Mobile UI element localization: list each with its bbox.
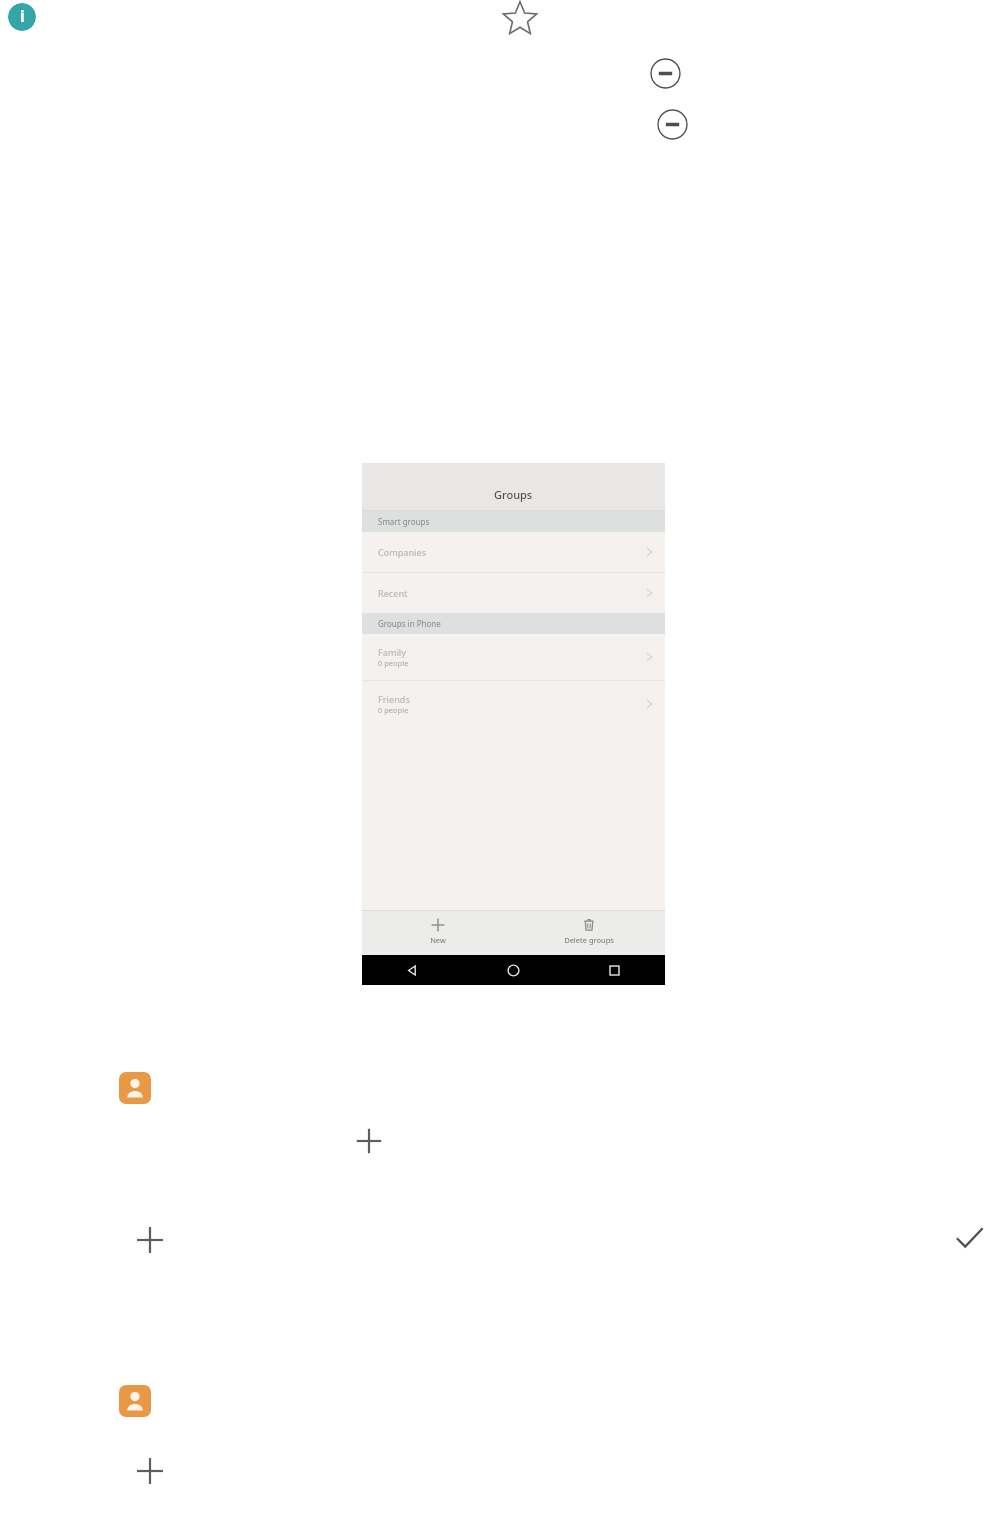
button[interactable]: Favourite xyxy=(498,0,542,44)
staticText: Family xyxy=(378,646,407,658)
button[interactable]: Remove xyxy=(650,58,681,89)
staticText: Companies xyxy=(378,546,427,558)
button[interactable]: Information xyxy=(8,3,36,31)
button[interactable]: Contacts xyxy=(119,1385,151,1417)
button[interactable]: Add xyxy=(352,1124,386,1158)
button[interactable]: Add xyxy=(132,1222,168,1258)
button[interactable]: Companies xyxy=(362,532,665,572)
button[interactable]: Remove xyxy=(657,109,688,140)
staticText: 0 people xyxy=(378,658,409,668)
staticText: Friends xyxy=(378,693,410,705)
staticText: Smart groups xyxy=(378,516,430,527)
button[interactable]: Friends xyxy=(362,681,665,727)
button[interactable]: Family xyxy=(362,634,665,680)
staticText: Recent xyxy=(378,587,408,599)
button[interactable]: Back xyxy=(362,955,463,985)
button[interactable]: Recents xyxy=(564,955,665,985)
button[interactable]: Recent xyxy=(362,573,665,613)
button[interactable]: Delete groups xyxy=(513,911,665,945)
staticText: 0 people xyxy=(378,705,409,715)
staticText: New xyxy=(430,935,446,945)
staticText: Groups xyxy=(494,487,533,502)
button[interactable]: Home xyxy=(463,955,564,985)
staticText: Groups in Phone xyxy=(378,618,441,629)
button[interactable]: Add xyxy=(132,1453,168,1489)
staticText: i xyxy=(20,5,25,27)
button[interactable]: Confirm xyxy=(950,1220,988,1258)
staticText: Delete groups xyxy=(564,935,614,945)
button[interactable]: New xyxy=(362,911,513,945)
button[interactable]: Contacts xyxy=(119,1072,151,1104)
